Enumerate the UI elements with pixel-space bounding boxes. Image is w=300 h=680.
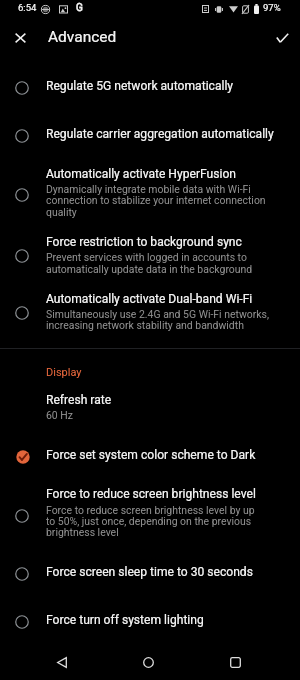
staticText: Force set system color scheme to Dark — [46, 448, 256, 462]
button[interactable] — [0, 283, 300, 340]
button[interactable] — [0, 385, 300, 429]
staticText: brightness level — [46, 526, 119, 538]
staticText: increasing network stability and bandwid… — [46, 319, 244, 331]
button[interactable]: Done — [266, 22, 298, 54]
staticText: Regulate carrier aggregation automatical… — [46, 127, 274, 141]
staticText: Force restriction to background sync — [46, 235, 242, 249]
staticText: to 50%, just once, depending on the prev… — [46, 515, 252, 527]
button[interactable] — [0, 111, 300, 159]
button[interactable] — [0, 158, 300, 226]
button[interactable]: Close — [4, 22, 36, 54]
button[interactable]: Home — [133, 647, 163, 677]
staticText: automatically update data in the backgro… — [46, 263, 253, 275]
staticText: Advanced — [48, 28, 117, 46]
staticText: Force screen sleep time to 30 seconds — [46, 565, 253, 579]
staticText: connection to stabilize your internet co… — [46, 194, 266, 206]
button[interactable] — [0, 597, 300, 645]
staticText: 97% — [263, 2, 281, 13]
staticText: Display — [46, 366, 82, 379]
button[interactable]: Back — [47, 647, 77, 677]
staticText: Automatically activate Dual-band Wi-Fi — [46, 292, 253, 306]
button[interactable] — [0, 549, 300, 597]
staticText: Prevent services with logged in accounts… — [46, 251, 247, 263]
staticText: Regulate 5G network automatically — [46, 79, 234, 93]
button[interactable] — [0, 226, 300, 283]
staticText: 6:54 — [18, 2, 37, 13]
button[interactable] — [0, 479, 300, 547]
staticText: Refresh rate — [46, 393, 112, 407]
staticText: Force to reduce screen brightness level … — [46, 504, 255, 516]
staticText: Force to reduce screen brightness level — [46, 487, 256, 501]
button[interactable] — [0, 433, 300, 481]
staticText: Simultaneously use 2.4G and 5G Wi-Fi net… — [46, 308, 270, 320]
staticText: Force turn off system lighting — [46, 613, 204, 627]
staticText: 60 Hz — [46, 409, 73, 421]
button[interactable] — [0, 64, 300, 112]
staticText: G — [76, 2, 83, 14]
staticText: Automatically activate HyperFusion — [46, 167, 236, 181]
staticText: quality — [46, 206, 77, 218]
button[interactable]: Recents — [220, 647, 250, 677]
staticText: Dynamically integrate mobile data with W… — [46, 183, 251, 195]
